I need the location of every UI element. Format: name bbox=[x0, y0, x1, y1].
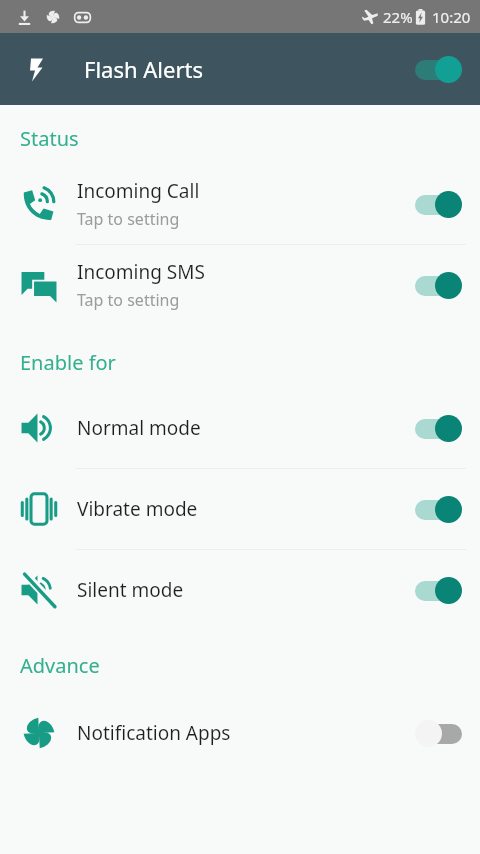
button[interactable]: Silent mode bbox=[0, 550, 480, 630]
staticText: Silent mode bbox=[77, 577, 184, 603]
staticText: Notification Apps bbox=[77, 720, 231, 746]
staticText: Flash Alerts bbox=[84, 54, 203, 84]
button[interactable]: Incoming Call bbox=[0, 164, 480, 244]
button[interactable]: Incoming Call toggle bbox=[409, 185, 468, 224]
staticText: Tap to setting bbox=[77, 208, 180, 230]
staticText: Normal mode bbox=[77, 415, 201, 441]
staticText: 10:20 bbox=[432, 7, 471, 27]
staticText: Incoming Call bbox=[77, 178, 200, 204]
button[interactable]: Silent mode toggle bbox=[409, 571, 468, 610]
staticText: Incoming SMS bbox=[77, 259, 205, 285]
button[interactable]: Notification Apps toggle bbox=[409, 714, 468, 753]
button[interactable]: Incoming SMS bbox=[0, 245, 480, 325]
other: Flash bbox=[24, 57, 49, 82]
button[interactable]: Normal mode bbox=[0, 388, 480, 468]
staticText: Status bbox=[20, 125, 79, 152]
staticText: Enable for bbox=[20, 349, 116, 376]
button[interactable]: Enable Flash Alerts bbox=[409, 50, 468, 89]
button[interactable]: Notification Apps bbox=[0, 693, 480, 773]
staticText: Tap to setting bbox=[77, 289, 180, 311]
button[interactable]: Normal mode toggle bbox=[409, 409, 468, 448]
staticText: 22% bbox=[383, 7, 413, 27]
button[interactable]: Vibrate mode bbox=[0, 469, 480, 549]
button[interactable]: Vibrate mode toggle bbox=[409, 490, 468, 529]
staticText: Advance bbox=[20, 652, 100, 679]
staticText: Vibrate mode bbox=[77, 496, 198, 522]
button[interactable]: Incoming SMS toggle bbox=[409, 266, 468, 305]
